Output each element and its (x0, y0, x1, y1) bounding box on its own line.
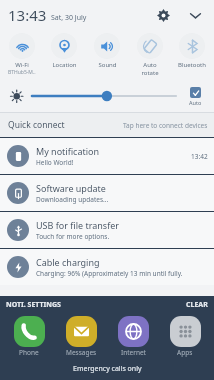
staticText: CLEAR (186, 300, 208, 310)
staticText: 13:43 (8, 5, 47, 25)
staticText: Software update (36, 182, 106, 194)
button[interactable]: Software update (0, 175, 214, 211)
staticText: Auto (189, 99, 202, 106)
button[interactable]: Quick connect (0, 113, 214, 137)
button[interactable]: USB for file transfer (0, 212, 214, 248)
button[interactable]: Messages (58, 316, 104, 357)
staticText: Tap here to connect devices (123, 121, 208, 130)
staticText: Phone (19, 348, 39, 357)
button[interactable]: Bluetooth (171, 30, 213, 69)
staticText: Quick connect (8, 119, 65, 131)
button[interactable]: Internet (110, 316, 156, 357)
staticText: Location (52, 61, 77, 69)
button[interactable]: Cable charging (0, 249, 214, 285)
staticText: Auto rotate (141, 61, 159, 77)
staticText: My notification (36, 145, 100, 157)
staticText: Downloading updates... (36, 195, 109, 204)
staticText: Emergency calls only (73, 364, 142, 374)
staticText: BTHub5-M.. (8, 69, 36, 76)
staticText: Messages (66, 348, 97, 357)
button[interactable]: Auto (182, 87, 208, 106)
staticText: Apps (177, 348, 193, 357)
staticText: Touch for more options. (36, 232, 110, 241)
staticText: Internet (121, 348, 146, 357)
staticText: Wi-Fi (15, 61, 29, 69)
staticText: Charging: 96% (Approximately 13 min unti… (36, 269, 183, 278)
button[interactable]: My notification (0, 138, 214, 174)
staticText: 13:42 (191, 152, 208, 161)
staticText: USB for file transfer (36, 219, 120, 231)
button[interactable]: Collapse (182, 2, 208, 28)
staticText: Cable charging (36, 256, 100, 268)
staticText: NOTI. SETTINGS (6, 300, 61, 310)
button[interactable]: Auto brightness (8, 87, 26, 105)
button[interactable]: NOTI. SETTINGS (6, 300, 61, 310)
button[interactable]: Auto rotate (129, 30, 171, 77)
staticText: Hello World! (36, 158, 74, 167)
staticText: Sound (98, 61, 117, 69)
button[interactable]: CLEAR (186, 300, 208, 310)
button[interactable]: Settings (150, 2, 176, 28)
button[interactable]: Apps (162, 316, 208, 357)
button[interactable]: Location (43, 30, 85, 69)
button[interactable]: Wi-Fi (1, 30, 43, 76)
button[interactable]: Sound (86, 30, 128, 69)
staticText: Sat, 30 July (51, 13, 87, 23)
button[interactable]: Phone (6, 316, 52, 357)
staticText: Bluetooth (178, 61, 206, 69)
